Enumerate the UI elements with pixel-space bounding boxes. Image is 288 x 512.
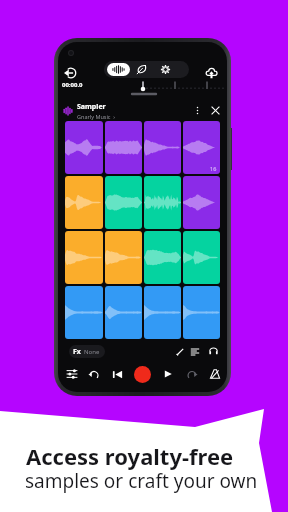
button[interactable]: Pad 5 [65, 176, 103, 229]
button[interactable]: Pad 16 [183, 286, 220, 339]
button[interactable]: Pad 3 [144, 121, 181, 174]
button[interactable]: Pad 1 [65, 121, 103, 174]
staticText: Fx [73, 347, 81, 357]
button[interactable]: Rewind [109, 366, 125, 382]
button[interactable]: Pad 4 [183, 121, 220, 174]
button[interactable]: Pad 8 [183, 176, 220, 229]
staticText: 00:00.0 [62, 81, 83, 89]
staticText: samples or craft your own [25, 468, 258, 494]
button[interactable]: Pad 10 [105, 231, 142, 284]
button[interactable]: Play [160, 366, 176, 382]
button[interactable]: Waveform [107, 63, 130, 76]
button[interactable]: Close [209, 104, 222, 117]
button[interactable]: Edit [133, 61, 150, 78]
button[interactable]: Undo [86, 366, 102, 382]
button[interactable]: Pad 13 [65, 286, 103, 339]
button[interactable]: Upload [203, 64, 220, 81]
button[interactable]: Pad 2 [105, 121, 142, 174]
button[interactable]: Settings [64, 366, 80, 382]
button[interactable]: Settings [157, 61, 174, 78]
button[interactable]: Pad 6 [105, 176, 142, 229]
button[interactable]: Pad 15 [144, 286, 181, 339]
staticText: Access royalty-free [26, 441, 234, 471]
button[interactable]: Edit track [172, 344, 187, 359]
button[interactable]: Fx [73, 345, 100, 358]
button[interactable]: Pad 7 [144, 176, 181, 229]
button[interactable]: More options [191, 104, 204, 117]
staticText: Sampler [77, 102, 106, 112]
staticText: None [84, 348, 100, 356]
button[interactable]: Pad 12 [183, 231, 220, 284]
button[interactable]: Headphones [206, 344, 221, 359]
button[interactable]: Sampler [63, 100, 222, 121]
staticText: Gnarly Music › [77, 113, 116, 120]
button[interactable]: Pad 14 [105, 286, 142, 339]
button[interactable]: Redo [184, 366, 200, 382]
button[interactable]: Pad 9 [65, 231, 103, 284]
staticText: 16 [210, 165, 217, 172]
button[interactable]: Record [134, 366, 151, 383]
button[interactable]: Pad 11 [144, 231, 181, 284]
button[interactable]: Mixer [187, 344, 202, 359]
button[interactable]: Back [62, 65, 78, 81]
button[interactable]: Metronome [207, 366, 223, 382]
